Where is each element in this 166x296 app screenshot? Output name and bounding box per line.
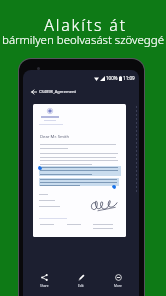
button[interactable]: More — [102, 272, 134, 290]
staticText: 11:09 — [123, 75, 135, 81]
button[interactable]: Back — [30, 88, 37, 95]
staticText: 100% — [106, 75, 118, 81]
staticText: More — [114, 284, 122, 288]
staticText: Dear Mr. Smith — [40, 134, 70, 140]
staticText: Share — [40, 284, 49, 288]
staticText: Alakíts át — [44, 14, 127, 36]
button[interactable]: Share — [28, 272, 60, 290]
button[interactable]: Edit — [65, 272, 97, 290]
staticText: CS4898_Agreement — [39, 89, 77, 94]
staticText: Edit — [78, 284, 84, 288]
staticText: bármilyen beolvasást szöveggé — [2, 32, 164, 48]
